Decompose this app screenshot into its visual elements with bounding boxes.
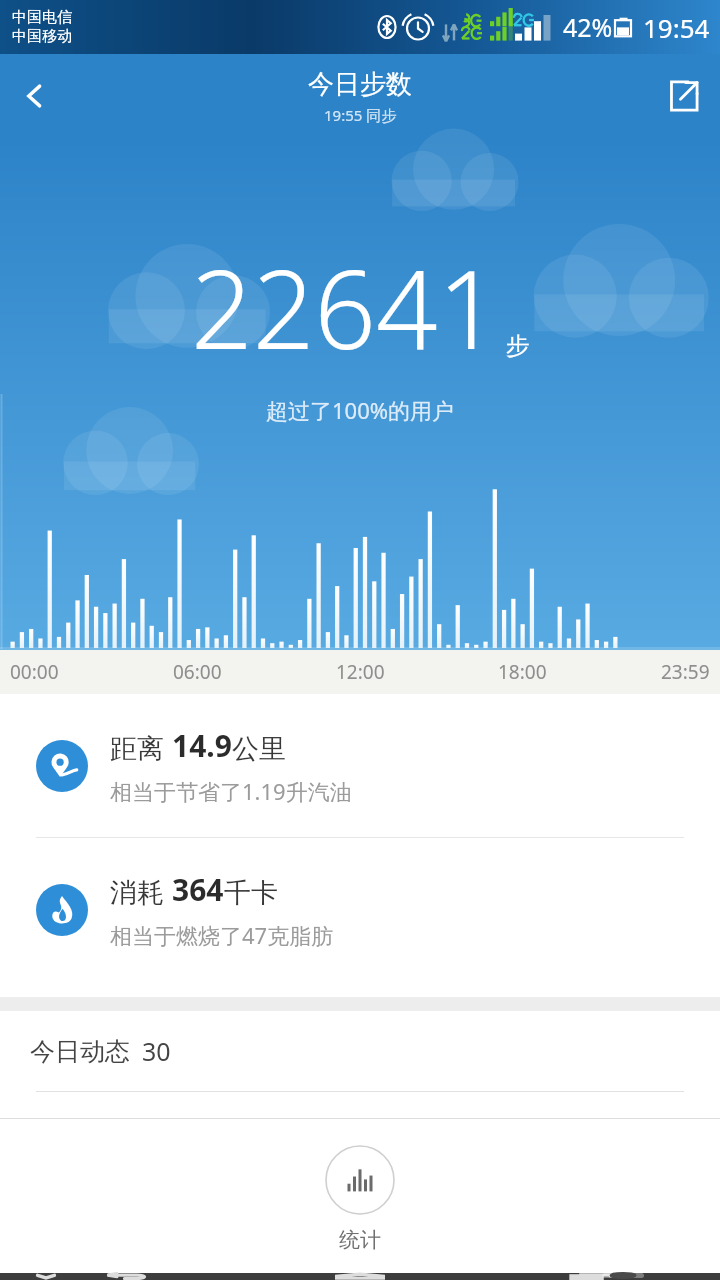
button[interactable]: 今日动态: [0, 1011, 720, 1118]
button[interactable]: 消耗: [0, 838, 720, 981]
button[interactable]: Home: [323, 1273, 397, 1280]
staticText: 千卡: [224, 876, 278, 910]
staticText: 相当于燃烧了47克脂肪: [110, 920, 334, 950]
staticText: 364: [172, 869, 224, 910]
staticText: 中国电信: [12, 8, 72, 27]
staticText: 中国移动: [12, 27, 72, 46]
staticText: 22641: [191, 234, 500, 381]
button[interactable]: 距离: [0, 694, 720, 837]
staticText: 06:00: [173, 659, 222, 685]
button[interactable]: 统计: [0, 1119, 720, 1273]
staticText: 30: [142, 1034, 171, 1068]
staticText: 步: [506, 331, 530, 361]
staticText: 42%: [563, 10, 613, 44]
staticText: 14.9: [172, 725, 232, 766]
staticText: 19:54: [643, 10, 710, 45]
staticText: 19:55 同步: [324, 105, 397, 125]
button[interactable]: Share: [646, 59, 720, 133]
staticText: 今日动态: [30, 1036, 130, 1067]
staticText: 超过了100%的用户: [266, 395, 455, 425]
staticText: 12:00: [336, 659, 385, 685]
staticText: 距离: [110, 729, 172, 766]
button[interactable]: Back: [0, 61, 70, 131]
staticText: 23:59: [661, 659, 710, 685]
staticText: 公里: [232, 732, 286, 766]
staticText: 18:00: [498, 659, 547, 685]
staticText: 00:00: [10, 659, 59, 685]
staticText: 统计: [339, 1227, 381, 1253]
staticText: 今日步数: [308, 68, 412, 101]
button[interactable]: Back: [90, 1273, 164, 1280]
staticText: 相当于节省了1.19升汽油: [110, 776, 352, 806]
button[interactable]: Hide keyboard: [18, 1273, 74, 1280]
staticText: 消耗: [110, 873, 172, 910]
button[interactable]: Recent apps: [556, 1273, 630, 1280]
